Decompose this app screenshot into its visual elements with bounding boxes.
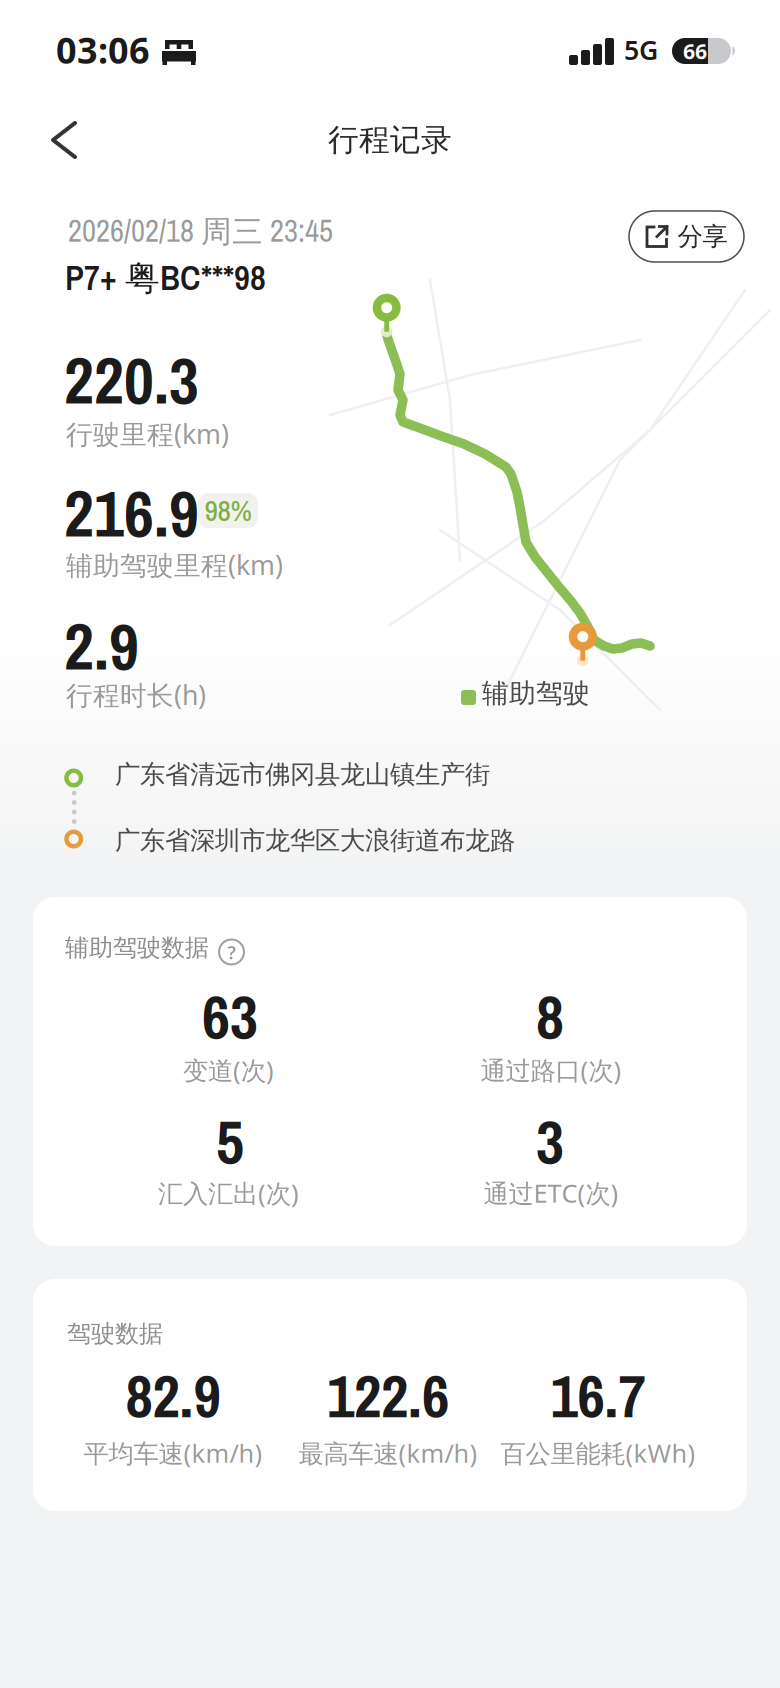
staticText: 广东省深圳市龙华区大浪街道布龙路 (115, 825, 515, 856)
staticText: 百公里能耗(kWh) (500, 1436, 695, 1470)
staticText: 分享 (677, 221, 727, 252)
staticText: 平均车速(km/h) (83, 1436, 262, 1470)
button[interactable]: 分享 (629, 211, 744, 262)
staticText: 8 (536, 975, 564, 1058)
staticText: P7+ 粤BC***98 (65, 254, 266, 301)
staticText: 5G (624, 32, 658, 67)
staticText: 2.9 (64, 602, 139, 690)
staticText: 16.7 (550, 1355, 645, 1436)
staticText: 行程记录 (328, 121, 452, 159)
staticText: 216.9 (64, 469, 199, 557)
staticText: 通过ETC(次) (483, 1176, 618, 1210)
staticText: 122.6 (327, 1355, 449, 1436)
staticText: 63 (202, 975, 258, 1058)
staticText: 最高车速(km/h) (298, 1436, 477, 1470)
staticText: ? (227, 940, 235, 964)
staticText: 驾驶数据 (67, 1319, 163, 1348)
staticText: 2026/02/18 周三 23:45 (68, 210, 333, 251)
staticText: 98% (204, 491, 251, 530)
button[interactable]: Back (0, 100, 107, 180)
button[interactable]: 帮助 (219, 939, 244, 964)
staticText: 汇入汇出(次) (158, 1176, 299, 1210)
staticText: 行程时长(h) (66, 677, 206, 712)
staticText: 通过路口(次) (480, 1053, 621, 1087)
staticText: 行驶里程(km) (66, 416, 229, 451)
staticText: 3 (536, 1100, 564, 1183)
staticText: 5 (216, 1100, 244, 1183)
staticText: 辅助驾驶数据 (65, 933, 209, 962)
staticText: 广东省清远市佛冈县龙山镇生产街 (115, 759, 490, 790)
staticText: 82.9 (125, 1355, 220, 1436)
staticText: 66 (683, 37, 707, 65)
staticText: 03:06 (56, 26, 150, 74)
staticText: 变道(次) (183, 1053, 274, 1087)
staticText: 辅助驾驶 (482, 677, 590, 710)
staticText: 220.3 (64, 336, 199, 424)
staticText: 辅助驾驶里程(km) (66, 547, 283, 582)
